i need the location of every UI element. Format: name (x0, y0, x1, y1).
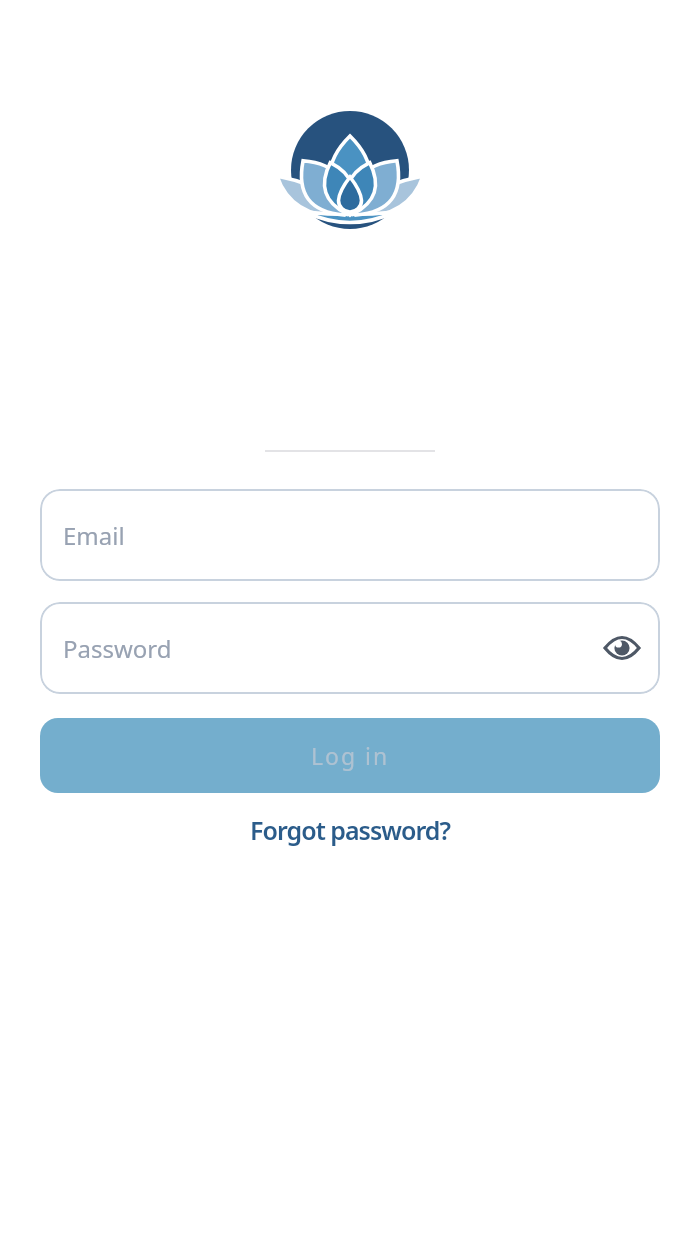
button[interactable] (604, 635, 640, 661)
button[interactable]: Forgot password? (250, 813, 450, 847)
staticText: Email (63, 519, 125, 552)
staticText: Log in (311, 740, 390, 771)
staticText: Password (63, 632, 172, 665)
button[interactable]: Email (40, 489, 660, 581)
button[interactable]: Log in (40, 718, 660, 793)
staticText: Forgot password? (250, 813, 450, 847)
button[interactable]: Password (40, 602, 660, 694)
